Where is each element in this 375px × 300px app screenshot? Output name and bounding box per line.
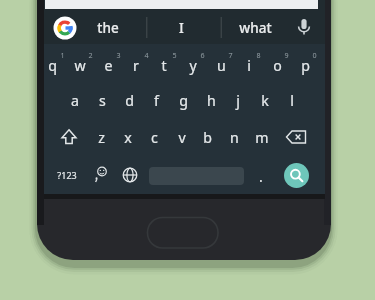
staticText: f [154, 91, 159, 110]
button[interactable]: k [252, 89, 278, 111]
staticText: y [189, 56, 197, 75]
staticText: v [178, 128, 186, 147]
button[interactable]: I [156, 13, 206, 43]
button[interactable]: g [170, 89, 196, 111]
staticText: 5 [172, 50, 177, 60]
button[interactable]: i [236, 54, 262, 76]
staticText: 8 [256, 50, 261, 60]
button[interactable] [89, 163, 113, 187]
button[interactable]: n [222, 126, 247, 148]
staticText: g [179, 91, 188, 110]
staticText: n [230, 128, 239, 147]
staticText: 1 [60, 50, 65, 60]
staticText: p [301, 56, 310, 75]
button[interactable]: u [208, 54, 234, 76]
staticText: d [125, 91, 134, 110]
button[interactable]: . [251, 165, 271, 187]
staticText: u [217, 56, 226, 75]
button[interactable]: d [116, 89, 142, 111]
staticText: h [207, 91, 216, 110]
staticText: what [239, 19, 272, 37]
button[interactable]: x [115, 126, 140, 148]
staticText: m [255, 128, 269, 147]
button[interactable]: o [264, 54, 290, 76]
button[interactable]: j [225, 89, 251, 111]
button[interactable]: p [292, 54, 318, 76]
button[interactable] [52, 15, 78, 41]
staticText: 9 [284, 50, 289, 60]
button[interactable]: ?123 [50, 164, 84, 186]
button[interactable] [118, 163, 142, 187]
staticText: k [261, 91, 269, 110]
staticText: b [203, 128, 212, 147]
staticText: i [247, 56, 251, 75]
button[interactable]: l [279, 89, 305, 111]
button[interactable]: a [62, 89, 88, 111]
staticText: o [273, 56, 282, 75]
staticText: 6 [200, 50, 205, 60]
staticText: 7 [228, 50, 233, 60]
staticText: l [290, 91, 294, 110]
staticText: c [151, 128, 158, 147]
staticText: r [133, 56, 139, 75]
button[interactable] [294, 15, 314, 39]
staticText: t [161, 56, 167, 75]
staticText: s [99, 91, 106, 110]
staticText: e [104, 56, 113, 75]
staticText: 4 [144, 50, 149, 60]
button[interactable]: h [198, 89, 224, 111]
staticText: . [259, 167, 263, 186]
button[interactable]: z [89, 126, 114, 148]
staticText: q [48, 56, 57, 75]
button[interactable]: q [39, 54, 65, 76]
staticText: 2 [88, 50, 93, 60]
button[interactable]: what [227, 13, 283, 43]
button[interactable]: the [83, 13, 133, 43]
button[interactable]: s [89, 89, 115, 111]
staticText: j [236, 91, 240, 110]
button[interactable]: f [143, 89, 169, 111]
button[interactable]: r [123, 54, 149, 76]
staticText: I [179, 19, 184, 37]
button[interactable] [284, 163, 309, 188]
button[interactable] [56, 125, 82, 149]
staticText: the [97, 19, 119, 37]
button[interactable]: e [95, 54, 121, 76]
staticText: 0 [312, 50, 317, 60]
staticText: a [71, 91, 79, 110]
staticText: z [98, 128, 105, 147]
button[interactable] [282, 125, 310, 149]
button[interactable]: w [67, 54, 93, 76]
button[interactable]: c [142, 126, 167, 148]
staticText: x [124, 128, 132, 147]
button[interactable]: b [195, 126, 220, 148]
button[interactable]: t [151, 54, 177, 76]
button[interactable]: v [169, 126, 194, 148]
staticText: ?123 [57, 169, 77, 181]
staticText: w [74, 56, 86, 75]
button[interactable]: m [249, 126, 274, 148]
button[interactable]: y [180, 54, 206, 76]
staticText: 3 [116, 50, 121, 60]
